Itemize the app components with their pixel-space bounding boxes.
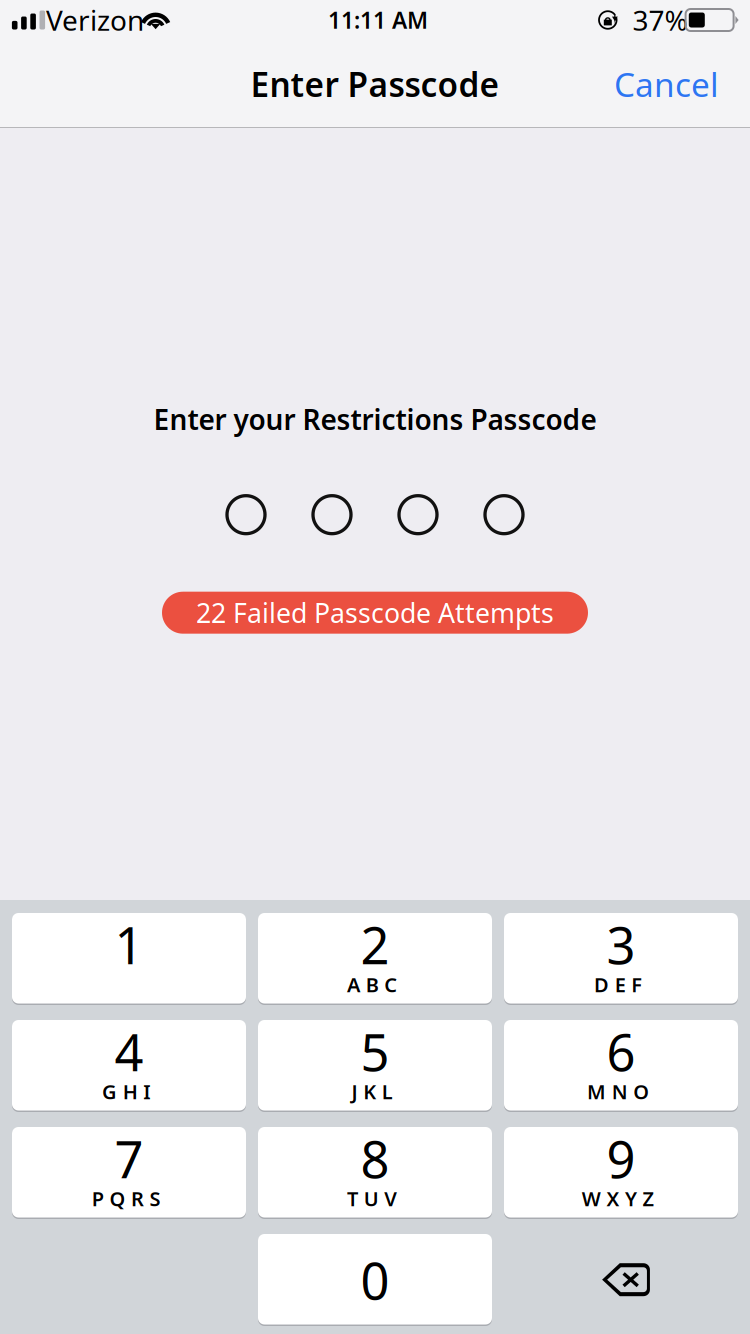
staticText: Enter your Restrictions Passcode <box>153 400 596 438</box>
staticText: 6 <box>606 1018 635 1085</box>
staticText: 7 <box>114 1125 143 1192</box>
staticText: 1 <box>114 911 143 978</box>
staticText: 3 <box>606 911 635 978</box>
staticText: MNO <box>587 1078 649 1105</box>
button[interactable]: 0 <box>258 1234 492 1326</box>
staticText: 22 Failed Passcode Attempts <box>196 595 554 630</box>
staticText: 9 <box>606 1125 635 1192</box>
button[interactable]: 3 <box>504 913 738 1005</box>
staticText: GHI <box>102 1078 150 1105</box>
staticText: TUV <box>347 1185 397 1212</box>
staticText: WXYZ <box>582 1185 655 1212</box>
staticText: 0 <box>360 1246 389 1314</box>
button[interactable]: Delete <box>504 1234 738 1326</box>
staticText: 4 <box>114 1018 143 1085</box>
staticText: Verizon <box>46 1 144 39</box>
staticText: JKL <box>352 1078 393 1105</box>
staticText: ABC <box>347 971 397 998</box>
staticText: 8 <box>360 1125 389 1192</box>
button[interactable]: 9 <box>504 1127 738 1219</box>
staticText: 11:11 AM <box>328 5 428 35</box>
staticText: DEF <box>594 971 642 998</box>
button[interactable]: 8 <box>258 1127 492 1219</box>
button[interactable]: 5 <box>258 1020 492 1112</box>
button[interactable]: 6 <box>504 1020 738 1112</box>
button[interactable]: 1 <box>12 913 246 1005</box>
button[interactable]: 2 <box>258 913 492 1005</box>
staticText: 37% <box>633 1 688 39</box>
staticText: Enter Passcode <box>250 62 499 106</box>
staticText: PQRS <box>92 1185 161 1212</box>
staticText: 5 <box>360 1018 389 1085</box>
button[interactable]: 7 <box>12 1127 246 1219</box>
button[interactable]: Cancel <box>597 48 736 120</box>
button[interactable]: 4 <box>12 1020 246 1112</box>
staticText: Cancel <box>614 62 719 106</box>
staticText: 2 <box>360 911 389 978</box>
